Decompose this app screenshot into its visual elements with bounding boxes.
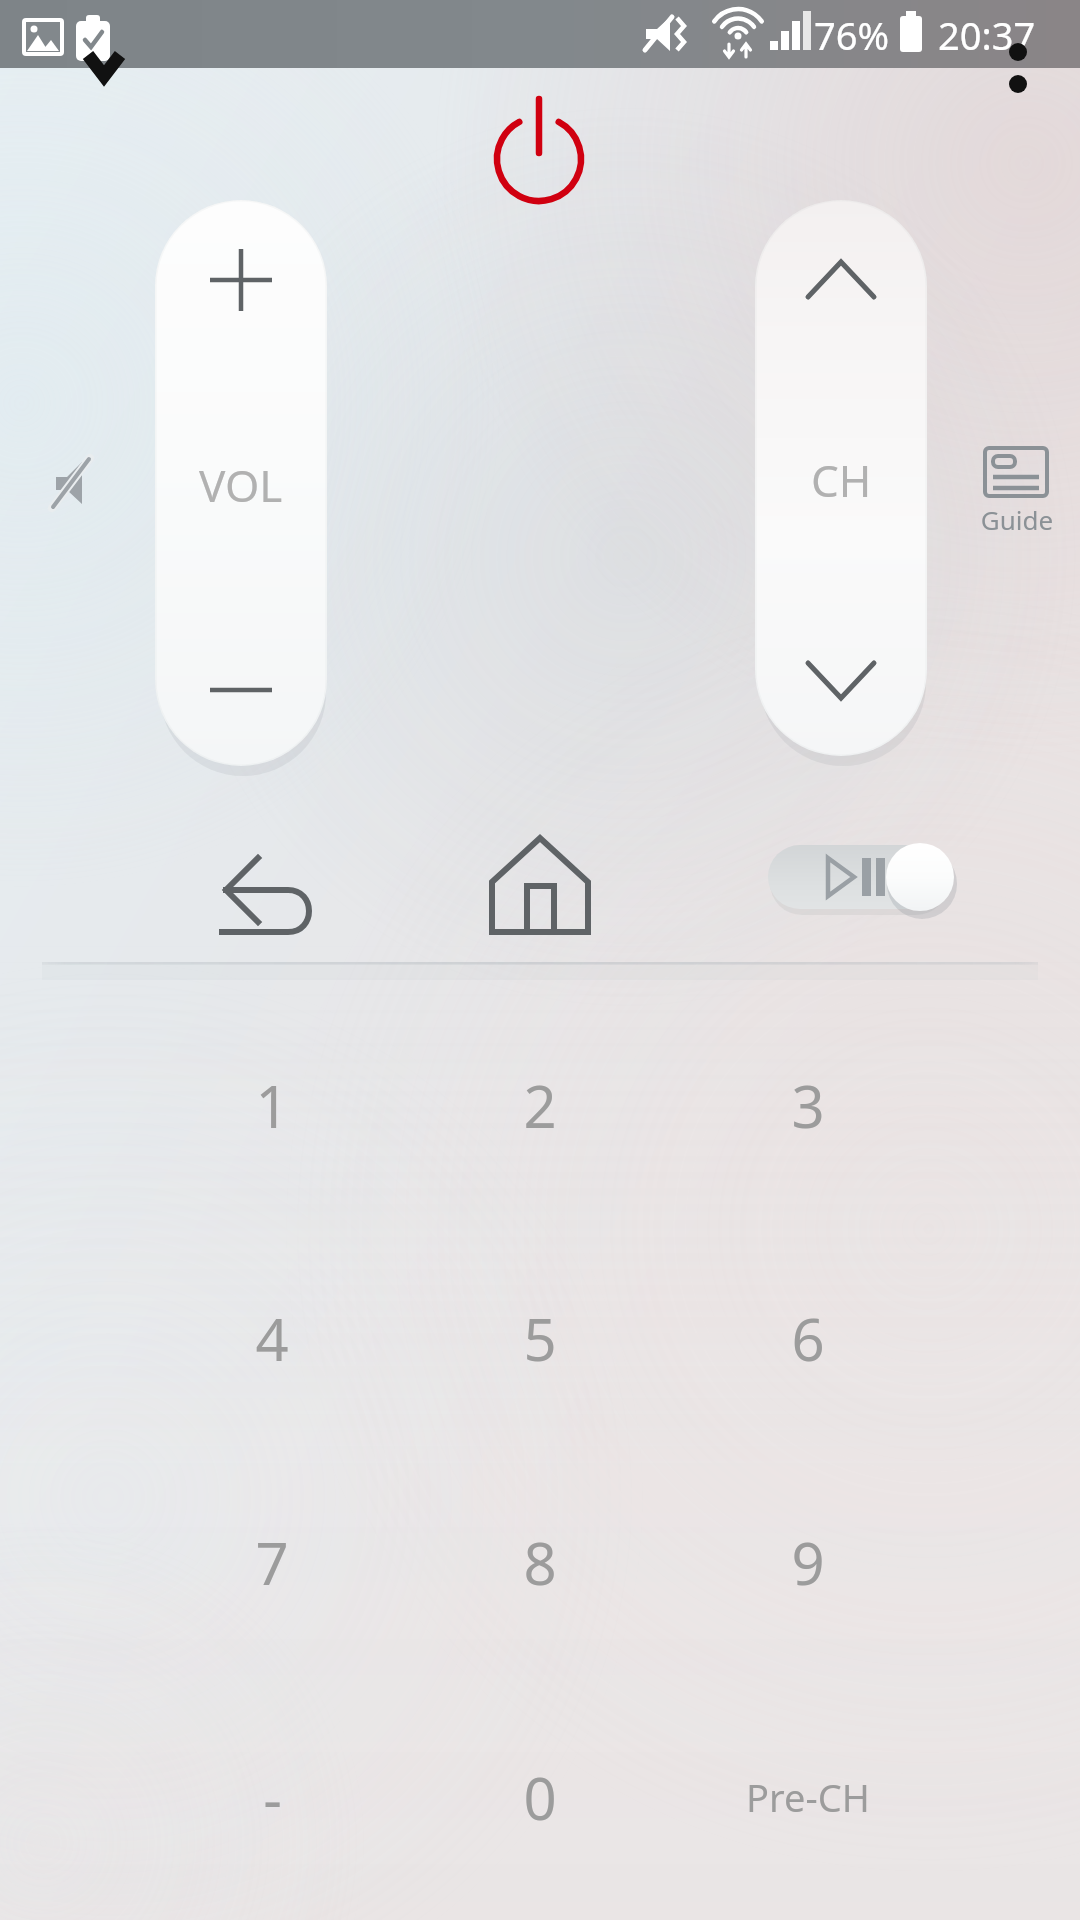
- button[interactable]: 2: [406, 994, 674, 1216]
- staticText: 4: [255, 1299, 289, 1378]
- staticText: 9: [791, 1523, 825, 1602]
- button[interactable]: VOL: [155, 420, 327, 550]
- button[interactable]: 4: [138, 1227, 406, 1449]
- button[interactable]: 0: [406, 1686, 674, 1908]
- staticText: 2: [523, 1066, 557, 1145]
- staticText: -: [263, 1758, 282, 1837]
- staticText: 6: [791, 1299, 825, 1378]
- staticText: Guide: [979, 502, 1055, 536]
- staticText: 0: [523, 1758, 557, 1837]
- staticText: 76%: [814, 9, 890, 61]
- button[interactable]: 8: [406, 1451, 674, 1673]
- staticText: CH: [811, 450, 872, 510]
- staticText: Pre-CH: [746, 1771, 870, 1823]
- button[interactable]: Home: [470, 820, 610, 960]
- button[interactable]: Back: [200, 820, 340, 960]
- button[interactable]: CH: [755, 415, 927, 545]
- staticText: VOL: [199, 455, 283, 515]
- button[interactable]: Volume up: [181, 220, 301, 340]
- staticText: 1: [255, 1066, 289, 1145]
- button[interactable]: Channel up: [781, 220, 901, 340]
- button[interactable]: 1: [138, 994, 406, 1216]
- staticText: 3: [791, 1066, 825, 1145]
- staticText: 7: [255, 1523, 289, 1602]
- button[interactable]: 6: [674, 1227, 942, 1449]
- button[interactable]: 7: [138, 1451, 406, 1673]
- staticText: 8: [523, 1523, 557, 1602]
- button[interactable]: 3: [674, 994, 942, 1216]
- staticText: 20:37: [938, 9, 1036, 61]
- button[interactable]: Mute: [30, 430, 140, 540]
- button[interactable]: Power: [464, 83, 614, 223]
- button[interactable]: Guide: [965, 440, 1070, 550]
- button[interactable]: Channel down: [781, 620, 901, 740]
- button[interactable]: Pre-CH: [674, 1686, 942, 1908]
- button[interactable]: 5: [406, 1227, 674, 1449]
- button[interactable]: Play pause: [760, 832, 960, 942]
- staticText: 5: [523, 1299, 557, 1378]
- button[interactable]: Volume down: [181, 630, 301, 750]
- button[interactable]: 9: [674, 1451, 942, 1673]
